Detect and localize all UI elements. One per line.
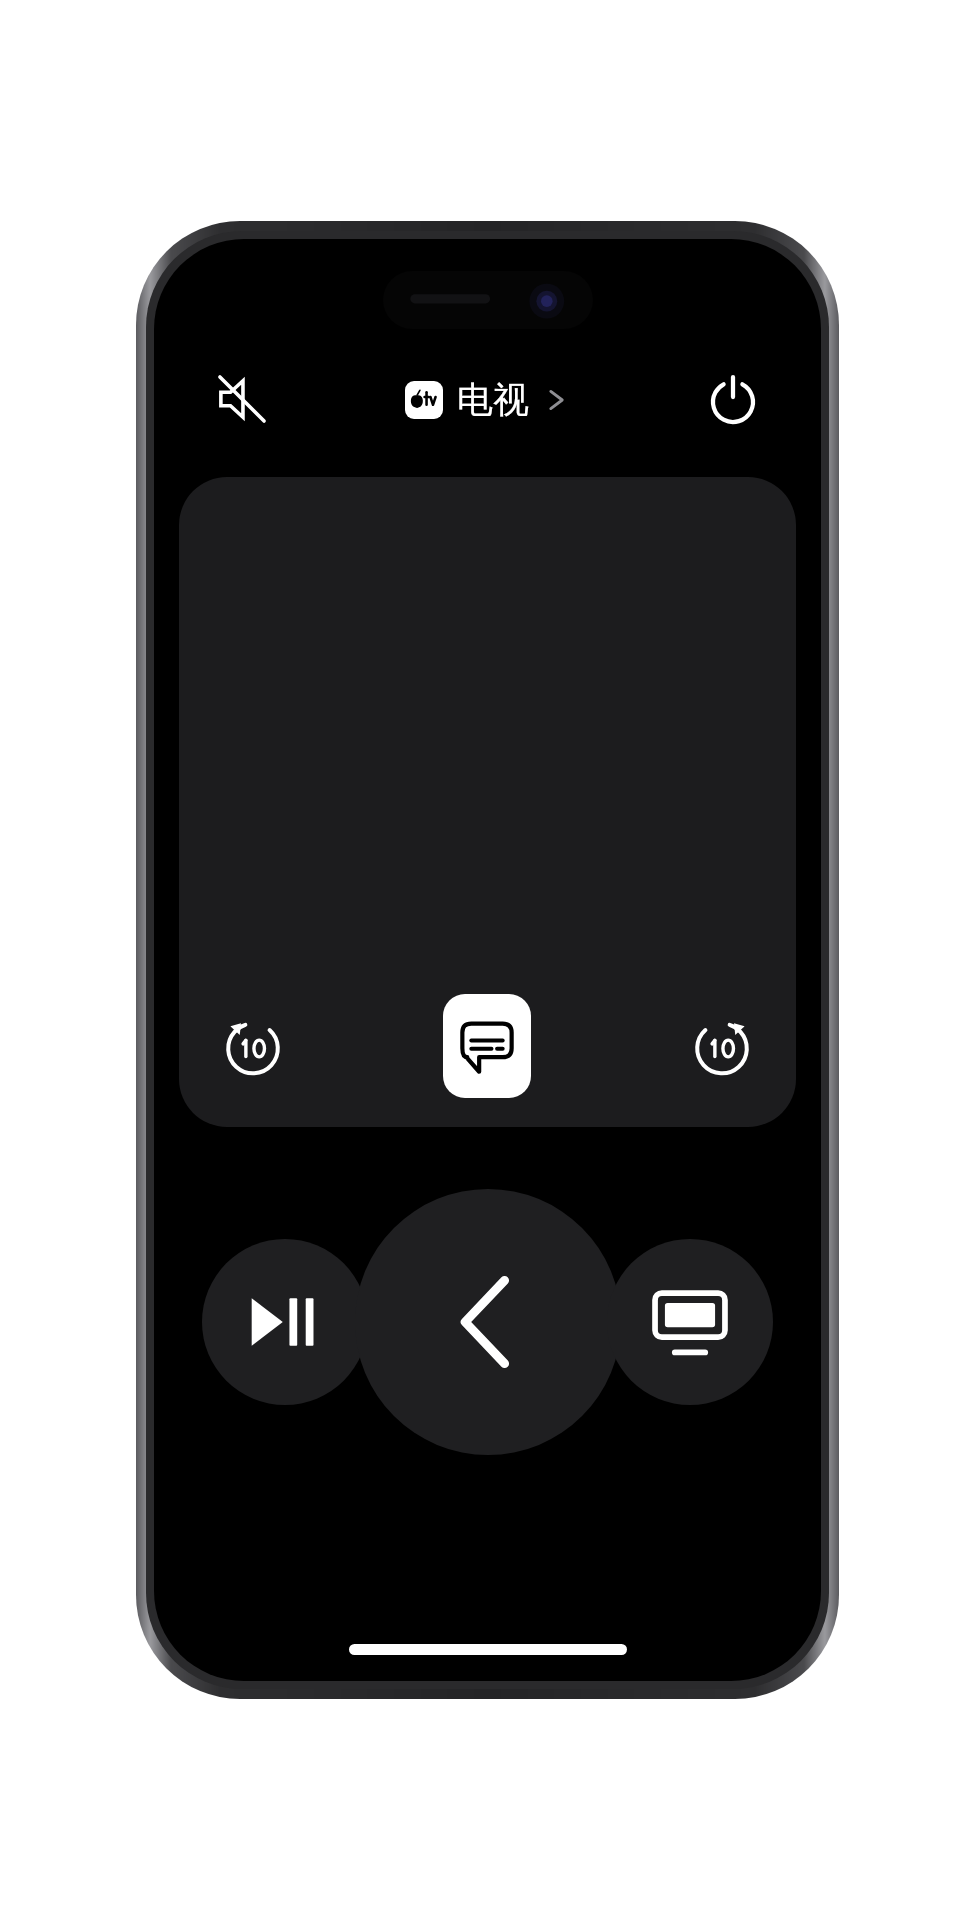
staticText: 电视 bbox=[457, 377, 529, 422]
button[interactable]: Mute bbox=[202, 359, 282, 439]
button[interactable]: Power bbox=[693, 359, 773, 439]
button[interactable]: Skip forward 10 seconds bbox=[672, 996, 772, 1096]
button[interactable]: Skip back 10 seconds bbox=[179, 477, 796, 1127]
button[interactable]: Play or pause bbox=[202, 1239, 368, 1405]
button[interactable]: Back bbox=[355, 1189, 621, 1455]
button[interactable]: 电视 bbox=[399, 373, 575, 426]
button[interactable]: TV bbox=[607, 1239, 773, 1405]
button[interactable]: Skip back 10 seconds bbox=[203, 996, 303, 1096]
button[interactable]: Subtitles bbox=[443, 994, 531, 1098]
